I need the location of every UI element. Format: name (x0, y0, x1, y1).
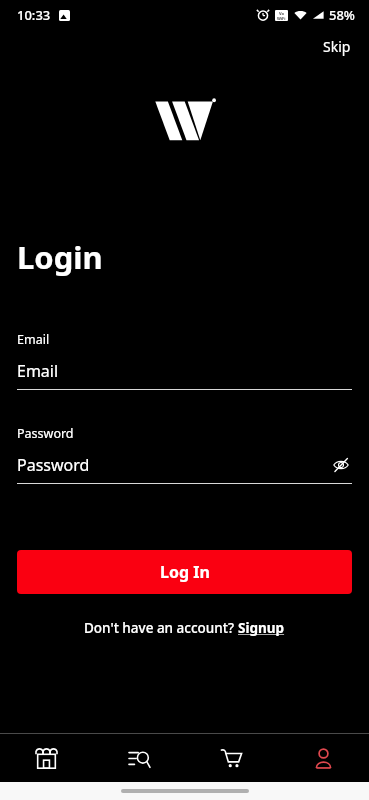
button[interactable]: Log In (17, 550, 352, 594)
staticText: Don't have an account? (84, 619, 238, 637)
staticText: 10:33 (17, 6, 51, 24)
staticText: Email (17, 331, 50, 348)
button[interactable]: Show password (330, 454, 352, 476)
staticText: WiFi (277, 16, 286, 21)
staticText: Signup (238, 619, 285, 637)
staticText: Password (17, 454, 330, 476)
button[interactable]: Password (17, 425, 352, 484)
button[interactable]: Skip (315, 33, 359, 60)
staticText: Password (17, 425, 74, 442)
button[interactable]: Account (277, 734, 369, 782)
button[interactable]: Cart (185, 734, 277, 782)
staticText: Log In (160, 561, 210, 583)
button[interactable]: Shop (0, 734, 93, 782)
staticText: Vo (279, 11, 285, 16)
staticText: Login (17, 236, 103, 278)
staticText: 58% (329, 6, 355, 24)
button[interactable]: Signup (238, 619, 285, 637)
staticText: Skip (323, 37, 351, 56)
staticText: Email (17, 360, 352, 382)
button[interactable]: Search (93, 734, 185, 782)
button[interactable]: Email (17, 331, 352, 390)
